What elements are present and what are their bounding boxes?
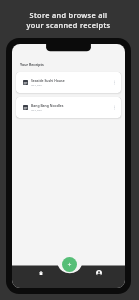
- button[interactable]: Seaside Sushi House: [16, 72, 121, 93]
- staticText: Apr 4, 2024: [31, 84, 42, 87]
- staticText: Store and browse all your scanned receip…: [0, 10, 138, 30]
- button[interactable]: Home: [35, 267, 47, 279]
- staticText: Seaside Sushi House: [31, 78, 65, 83]
- staticText: Apr 2, 2024: [31, 109, 42, 112]
- button[interactable]: More options: [110, 103, 119, 112]
- button[interactable]: Profile: [93, 267, 105, 279]
- staticText: Your Receipts: [20, 62, 44, 67]
- button[interactable]: Add receipt: [62, 257, 77, 272]
- button[interactable]: More options: [110, 78, 119, 87]
- staticText: Bang Bang Noodles: [31, 103, 64, 108]
- button[interactable]: Bang Bang Noodles: [16, 97, 121, 118]
